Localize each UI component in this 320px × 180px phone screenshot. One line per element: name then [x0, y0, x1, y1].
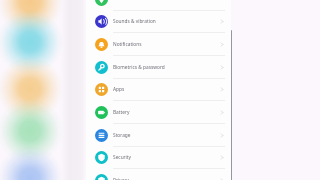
- button[interactable]: Battery: [86, 101, 231, 124]
- button[interactable]: Notifications: [86, 33, 231, 56]
- staticText: Storage: [113, 132, 131, 139]
- staticText: Sounds & vibration: [113, 18, 156, 25]
- button[interactable]: Sounds & vibration: [86, 10, 231, 33]
- button[interactable]: Privacy: [86, 169, 231, 180]
- button[interactable]: Apps: [86, 78, 231, 101]
- button[interactable]: Biometrics & password: [86, 56, 231, 79]
- staticText: Battery: [113, 109, 130, 116]
- staticText: Apps: [113, 86, 125, 93]
- staticText: Security: [113, 154, 132, 161]
- staticText: Privacy: [113, 177, 129, 180]
- staticText: Biometrics & password: [113, 64, 165, 71]
- button[interactable]: Location: [86, 0, 231, 11]
- staticText: Notifications: [113, 41, 142, 48]
- button[interactable]: Storage: [86, 124, 231, 147]
- button[interactable]: Security: [86, 146, 231, 169]
